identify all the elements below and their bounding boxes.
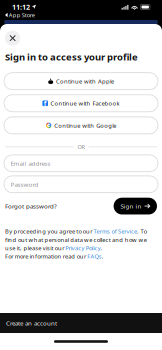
staticText: . To — [137, 227, 147, 235]
button[interactable]: Create an account — [0, 313, 162, 333]
button[interactable]: Continue with Google — [4, 117, 158, 134]
staticText: Privacy Policy — [65, 244, 101, 252]
button[interactable]: Sign in — [114, 198, 157, 214]
staticText: Continue with Facebook — [51, 99, 120, 107]
staticText: OR — [77, 143, 84, 151]
button[interactable]: Continue with Apple — [4, 73, 158, 90]
staticText: Continue with Google — [54, 121, 116, 129]
staticText: Password — [10, 180, 38, 188]
button[interactable]: Close — [5, 30, 20, 46]
staticText: f — [44, 99, 47, 108]
staticText: For more information read our — [5, 252, 87, 260]
staticText: . — [102, 252, 104, 260]
staticText: 11:12 — [12, 2, 30, 12]
staticText: Create an account — [6, 319, 57, 327]
staticText: Sign in — [121, 202, 142, 210]
staticText: Forgot password? — [5, 202, 57, 210]
staticText: find out what personal data we collect a… — [5, 236, 147, 244]
staticText: Sign in to access your profile — [5, 50, 138, 63]
staticText: . — [101, 244, 103, 252]
button[interactable]: Forgot password? — [5, 198, 57, 214]
staticText: Email address — [10, 159, 50, 167]
staticText: use it, please visit our — [5, 244, 65, 252]
staticText: App Store — [9, 11, 35, 19]
staticText: Terms of Service — [93, 227, 137, 235]
staticText: Continue with Apple — [56, 77, 114, 85]
button[interactable]: f — [4, 95, 158, 112]
staticText: By proceeding you agree to our — [5, 227, 93, 235]
staticText: FAQs — [87, 252, 102, 260]
